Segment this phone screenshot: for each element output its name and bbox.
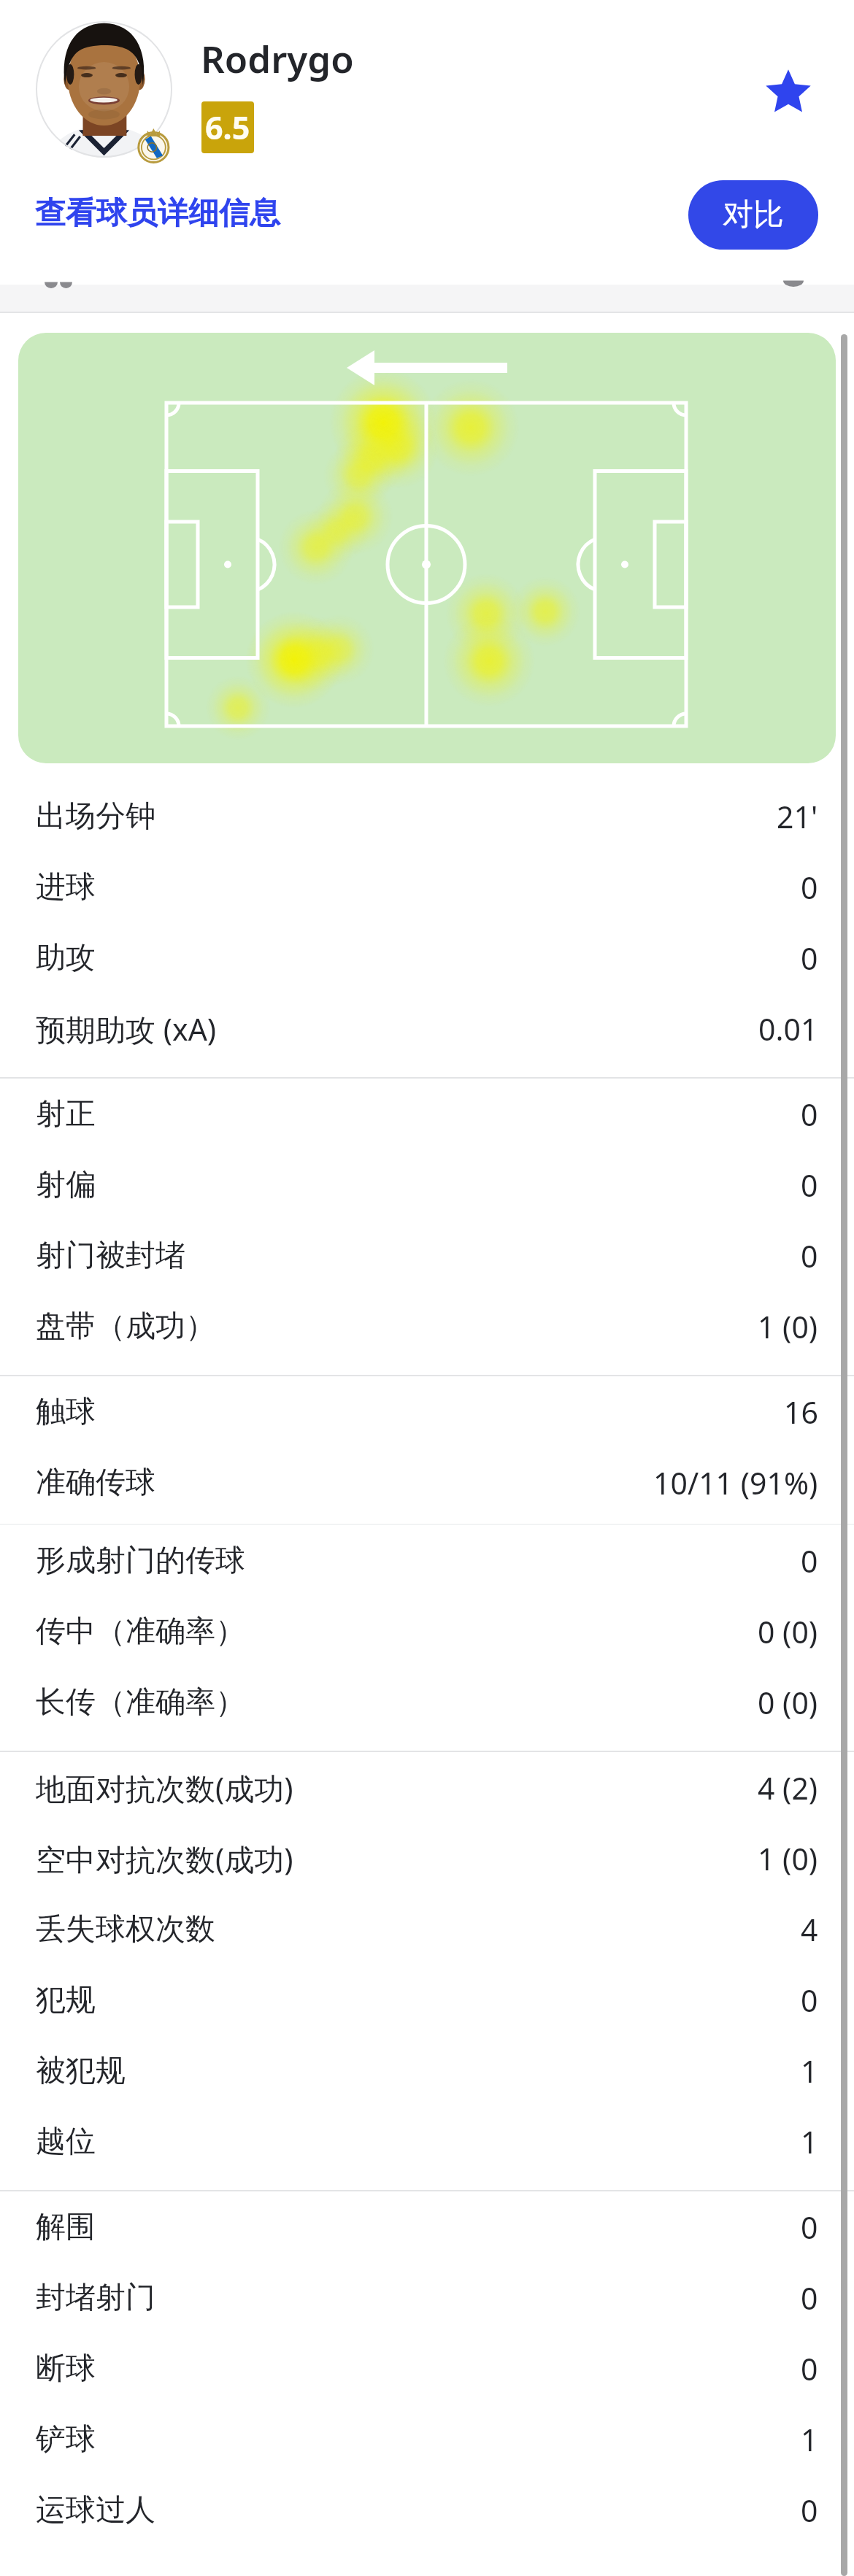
staticText: 铲球 — [36, 2421, 96, 2459]
staticText: 16 — [784, 1392, 818, 1432]
staticText: 传中（准确率） — [36, 1613, 245, 1651]
staticText: 形成射门的传球 — [36, 1542, 245, 1580]
staticText: 助攻 — [36, 939, 96, 977]
staticText: 0 — [801, 2207, 818, 2248]
staticText: 4 — [801, 1909, 818, 1950]
button[interactable]: Player photo — [36, 21, 172, 158]
staticText: 0 (0) — [758, 1611, 818, 1652]
button[interactable]: 准确传球 — [0, 1447, 854, 1518]
button[interactable]: 形成射门的传球 — [0, 1525, 854, 1596]
staticText: 准确传球 — [36, 1464, 155, 1502]
staticText: 1 — [801, 2051, 818, 2091]
staticText: 1 — [801, 2121, 818, 2162]
staticText: 越位 — [36, 2123, 96, 2161]
button[interactable]: 运球过人 — [0, 2475, 854, 2545]
staticText: 查看球员详细信息 — [35, 194, 280, 233]
button[interactable]: 助攻 — [0, 922, 854, 993]
staticText: 射门被封堵 — [36, 1237, 185, 1275]
staticText: 21' — [777, 796, 818, 837]
button[interactable]: 被犯规 — [0, 2035, 854, 2106]
staticText: 断球 — [36, 2350, 96, 2388]
button[interactable]: 传中（准确率） — [0, 1596, 854, 1667]
staticText: Rodrygo — [201, 33, 354, 83]
button[interactable]: 断球 — [0, 2333, 854, 2404]
button[interactable]: 射正 — [0, 1079, 854, 1149]
staticText: 犯规 — [36, 1981, 96, 2019]
staticText: 盘带（成功） — [36, 1308, 215, 1346]
staticText: 0 — [801, 2278, 818, 2318]
staticText: 地面对抗次数(成功) — [36, 1767, 293, 1808]
button[interactable]: 空中对抗次数(成功) — [0, 1823, 854, 1894]
staticText: 10/11 (91%) — [653, 1462, 818, 1503]
staticText: 1 — [801, 2419, 818, 2460]
staticText: 4 (2) — [758, 1767, 818, 1808]
staticText: 长传（准确率） — [36, 1684, 245, 1721]
staticText: 对比 — [723, 196, 784, 234]
staticText: 1 (0) — [758, 1306, 818, 1347]
staticText: 封堵射门 — [36, 2279, 155, 2317]
button[interactable]: 丢失球权次数 — [0, 1894, 854, 1964]
staticText: 出场分钟 — [36, 798, 155, 836]
button[interactable]: 盘带（成功） — [0, 1291, 854, 1362]
staticText: 被犯规 — [36, 2052, 126, 2090]
staticText: 0 — [801, 1540, 818, 1581]
button[interactable]: 对比 — [688, 180, 818, 250]
staticText: 触球 — [36, 1393, 96, 1431]
button[interactable]: 出场分钟 — [0, 781, 854, 852]
staticText: 0 — [801, 867, 818, 908]
button[interactable]: 铲球 — [0, 2404, 854, 2475]
button[interactable]: 越位 — [0, 2106, 854, 2177]
staticText: 预期助攻 (xA) — [36, 1009, 217, 1049]
button[interactable]: 长传（准确率） — [0, 1667, 854, 1738]
staticText: 0 — [801, 938, 818, 979]
button[interactable]: 解围 — [0, 2191, 854, 2262]
button[interactable]: Heat map — [18, 333, 836, 763]
staticText: 1 (0) — [758, 1838, 818, 1879]
staticText: 进球 — [36, 868, 96, 906]
button[interactable]: 预期助攻 (xA) — [0, 993, 854, 1064]
button[interactable]: 射门被封堵 — [0, 1220, 854, 1291]
staticText: 0 — [801, 1165, 818, 1206]
staticText: 0 — [801, 1235, 818, 1276]
staticText: 丢失球权次数 — [36, 1910, 215, 1948]
button[interactable]: 查看球员详细信息 — [35, 194, 280, 233]
staticText: 6.5 — [205, 106, 250, 149]
staticText: 射偏 — [36, 1166, 96, 1204]
button[interactable]: 射偏 — [0, 1149, 854, 1220]
staticText: 射正 — [36, 1095, 96, 1133]
button[interactable]: 犯规 — [0, 1964, 854, 2035]
staticText: 0 — [801, 2348, 818, 2389]
button[interactable]: 进球 — [0, 852, 854, 922]
button[interactable]: Favourite — [756, 59, 820, 123]
button[interactable]: 触球 — [0, 1376, 854, 1447]
button[interactable]: 封堵射门 — [0, 2262, 854, 2333]
staticText: 0 — [801, 1980, 818, 2021]
staticText: 空中对抗次数(成功) — [36, 1838, 293, 1879]
staticText: 0 — [801, 2490, 818, 2531]
staticText: 0 — [801, 1094, 818, 1135]
staticText: 0 (0) — [758, 1682, 818, 1723]
button[interactable]: 地面对抗次数(成功) — [0, 1752, 854, 1823]
staticText: 运球过人 — [36, 2491, 155, 2529]
staticText: 0.01 — [758, 1009, 818, 1049]
staticText: 解围 — [36, 2208, 96, 2246]
